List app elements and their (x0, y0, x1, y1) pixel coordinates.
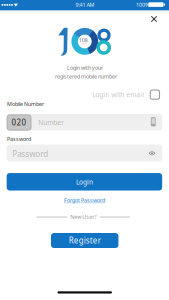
staticText: 9:41 AM (75, 1, 94, 8)
staticText: Login (76, 177, 93, 186)
staticText: 108 (79, 37, 88, 44)
button[interactable]: Password (7, 144, 162, 161)
staticText: Login with email (92, 90, 144, 99)
staticText: Password (12, 148, 48, 159)
button[interactable]: Login (7, 173, 162, 191)
button[interactable]: Login with email (92, 90, 159, 99)
staticText: 020 (12, 117, 27, 128)
staticText: 100% (136, 1, 149, 8)
button[interactable]: Show password (148, 150, 156, 156)
button[interactable]: Mobile Number (7, 114, 162, 130)
staticText: Mobile Number (7, 100, 44, 108)
staticText: registered mobile number (55, 73, 117, 80)
button[interactable]: Register (51, 233, 118, 248)
button[interactable]: Forgot Password (64, 197, 105, 204)
staticText: Forgot Password (64, 197, 105, 204)
button[interactable]: Close (149, 14, 159, 24)
staticText: Number (38, 118, 64, 127)
staticText: Login with your (67, 64, 103, 71)
staticText: Password (7, 135, 31, 143)
staticText: New User? (70, 213, 96, 220)
staticText: Register (69, 235, 101, 246)
